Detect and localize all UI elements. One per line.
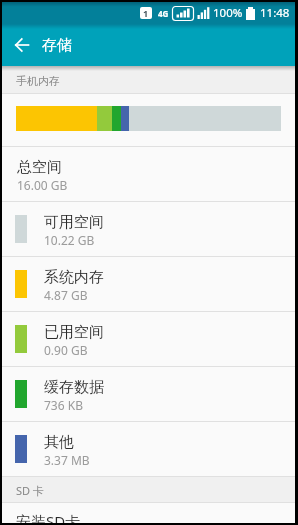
staticText: 手机内存	[16, 74, 60, 88]
staticText: 10.22 GB	[44, 232, 95, 248]
staticText: 1	[143, 7, 149, 19]
staticText: 4G	[158, 8, 169, 19]
staticText: 已用空间	[44, 323, 104, 342]
staticText: SD 卡	[16, 483, 44, 498]
staticText: 0.90 GB	[44, 342, 88, 358]
button[interactable]: 总空间	[2, 147, 295, 202]
button[interactable]: 其他	[2, 422, 295, 477]
staticText: 16.00 GB	[17, 177, 68, 193]
button[interactable]: 可用空间	[2, 202, 295, 257]
staticText: 安装SD卡	[16, 511, 81, 523]
button[interactable]: 已用空间	[2, 312, 295, 367]
staticText: 3.37 MB	[44, 452, 90, 468]
button[interactable]: 缓存数据	[2, 367, 295, 422]
staticText: 缓存数据	[44, 378, 104, 397]
button[interactable]: 安装SD卡	[2, 503, 295, 523]
staticText: 其他	[44, 433, 74, 452]
button[interactable]: 系统内存	[2, 257, 295, 312]
staticText: 可用空间	[44, 213, 104, 232]
staticText: 系统内存	[44, 268, 104, 287]
button[interactable]	[2, 24, 42, 66]
staticText: 100%	[213, 5, 243, 21]
staticText: 存储	[42, 36, 72, 55]
staticText: 总空间	[17, 158, 62, 177]
staticText: 4.87 GB	[44, 287, 88, 303]
staticText: 11:48	[260, 5, 290, 21]
staticText: 736 KB	[44, 397, 83, 413]
